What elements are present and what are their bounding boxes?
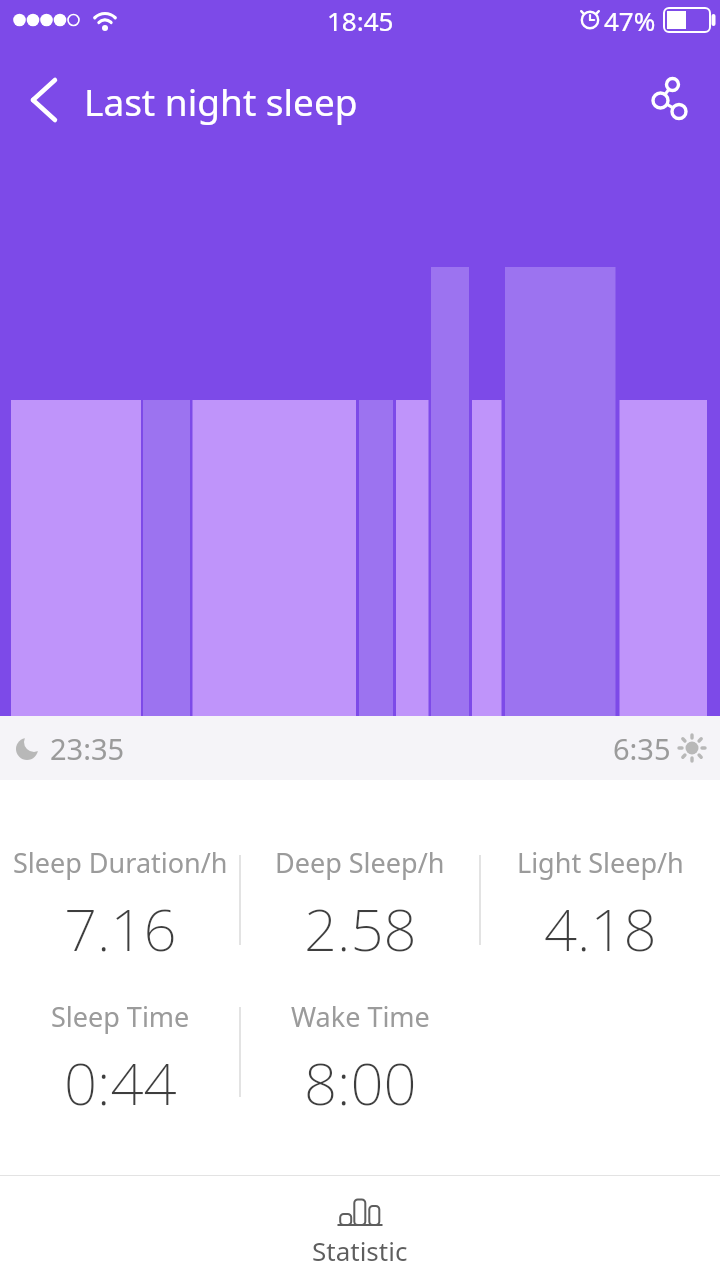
staticText: Sleep Time	[51, 998, 190, 1035]
staticText: 7.16	[64, 889, 177, 968]
staticText: 8:00	[304, 1043, 417, 1122]
staticText: Light Sleep/h	[517, 844, 684, 881]
button[interactable]	[628, 58, 700, 122]
button[interactable]	[10, 65, 66, 121]
staticText: 4.18	[544, 889, 657, 968]
staticText: Sleep Duration/h	[13, 844, 228, 881]
staticText: Deep Sleep/h	[275, 844, 445, 881]
staticText: 23:35	[50, 729, 125, 768]
staticText: 6:35	[613, 729, 671, 768]
staticText: 2.58	[304, 889, 417, 968]
staticText: Statistic	[312, 1233, 408, 1268]
staticText: 0:44	[64, 1043, 177, 1122]
button[interactable]: Statistic	[312, 1198, 408, 1268]
staticText: 18:45	[327, 3, 394, 38]
staticText: 47%	[604, 3, 656, 38]
staticText: Wake Time	[291, 998, 430, 1035]
staticText: Last night sleep	[84, 76, 358, 126]
